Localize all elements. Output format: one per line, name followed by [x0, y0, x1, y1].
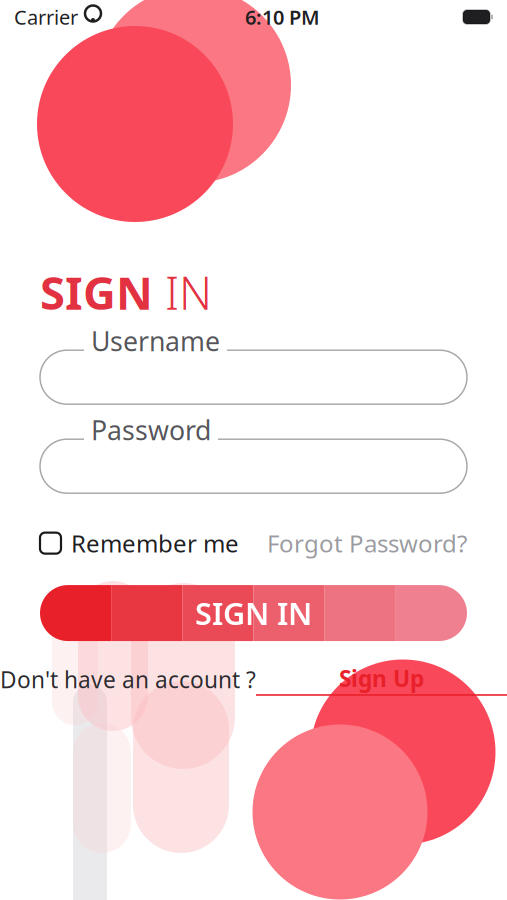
button[interactable]: Password	[40, 439, 467, 493]
staticText: SIGN	[40, 262, 153, 322]
button[interactable]: Don't have an account ?	[0, 663, 507, 696]
staticText: 6:10 PM	[245, 4, 320, 30]
staticText: Username	[91, 323, 220, 359]
button[interactable]: SIGN IN	[40, 585, 467, 641]
staticText: Sign Up	[339, 663, 424, 693]
button[interactable]: Forgot Password?	[267, 527, 467, 559]
button[interactable]: Username	[40, 350, 467, 404]
staticText: IN	[153, 262, 212, 322]
staticText: Don't have an account ?	[0, 664, 256, 694]
staticText: SIGN IN	[195, 593, 312, 633]
staticText: Password	[91, 412, 211, 448]
staticText: Remember me	[71, 527, 239, 559]
staticText: Forgot Password?	[267, 527, 467, 559]
staticText: Carrier	[14, 4, 78, 30]
button[interactable]: Remember me	[40, 527, 239, 559]
